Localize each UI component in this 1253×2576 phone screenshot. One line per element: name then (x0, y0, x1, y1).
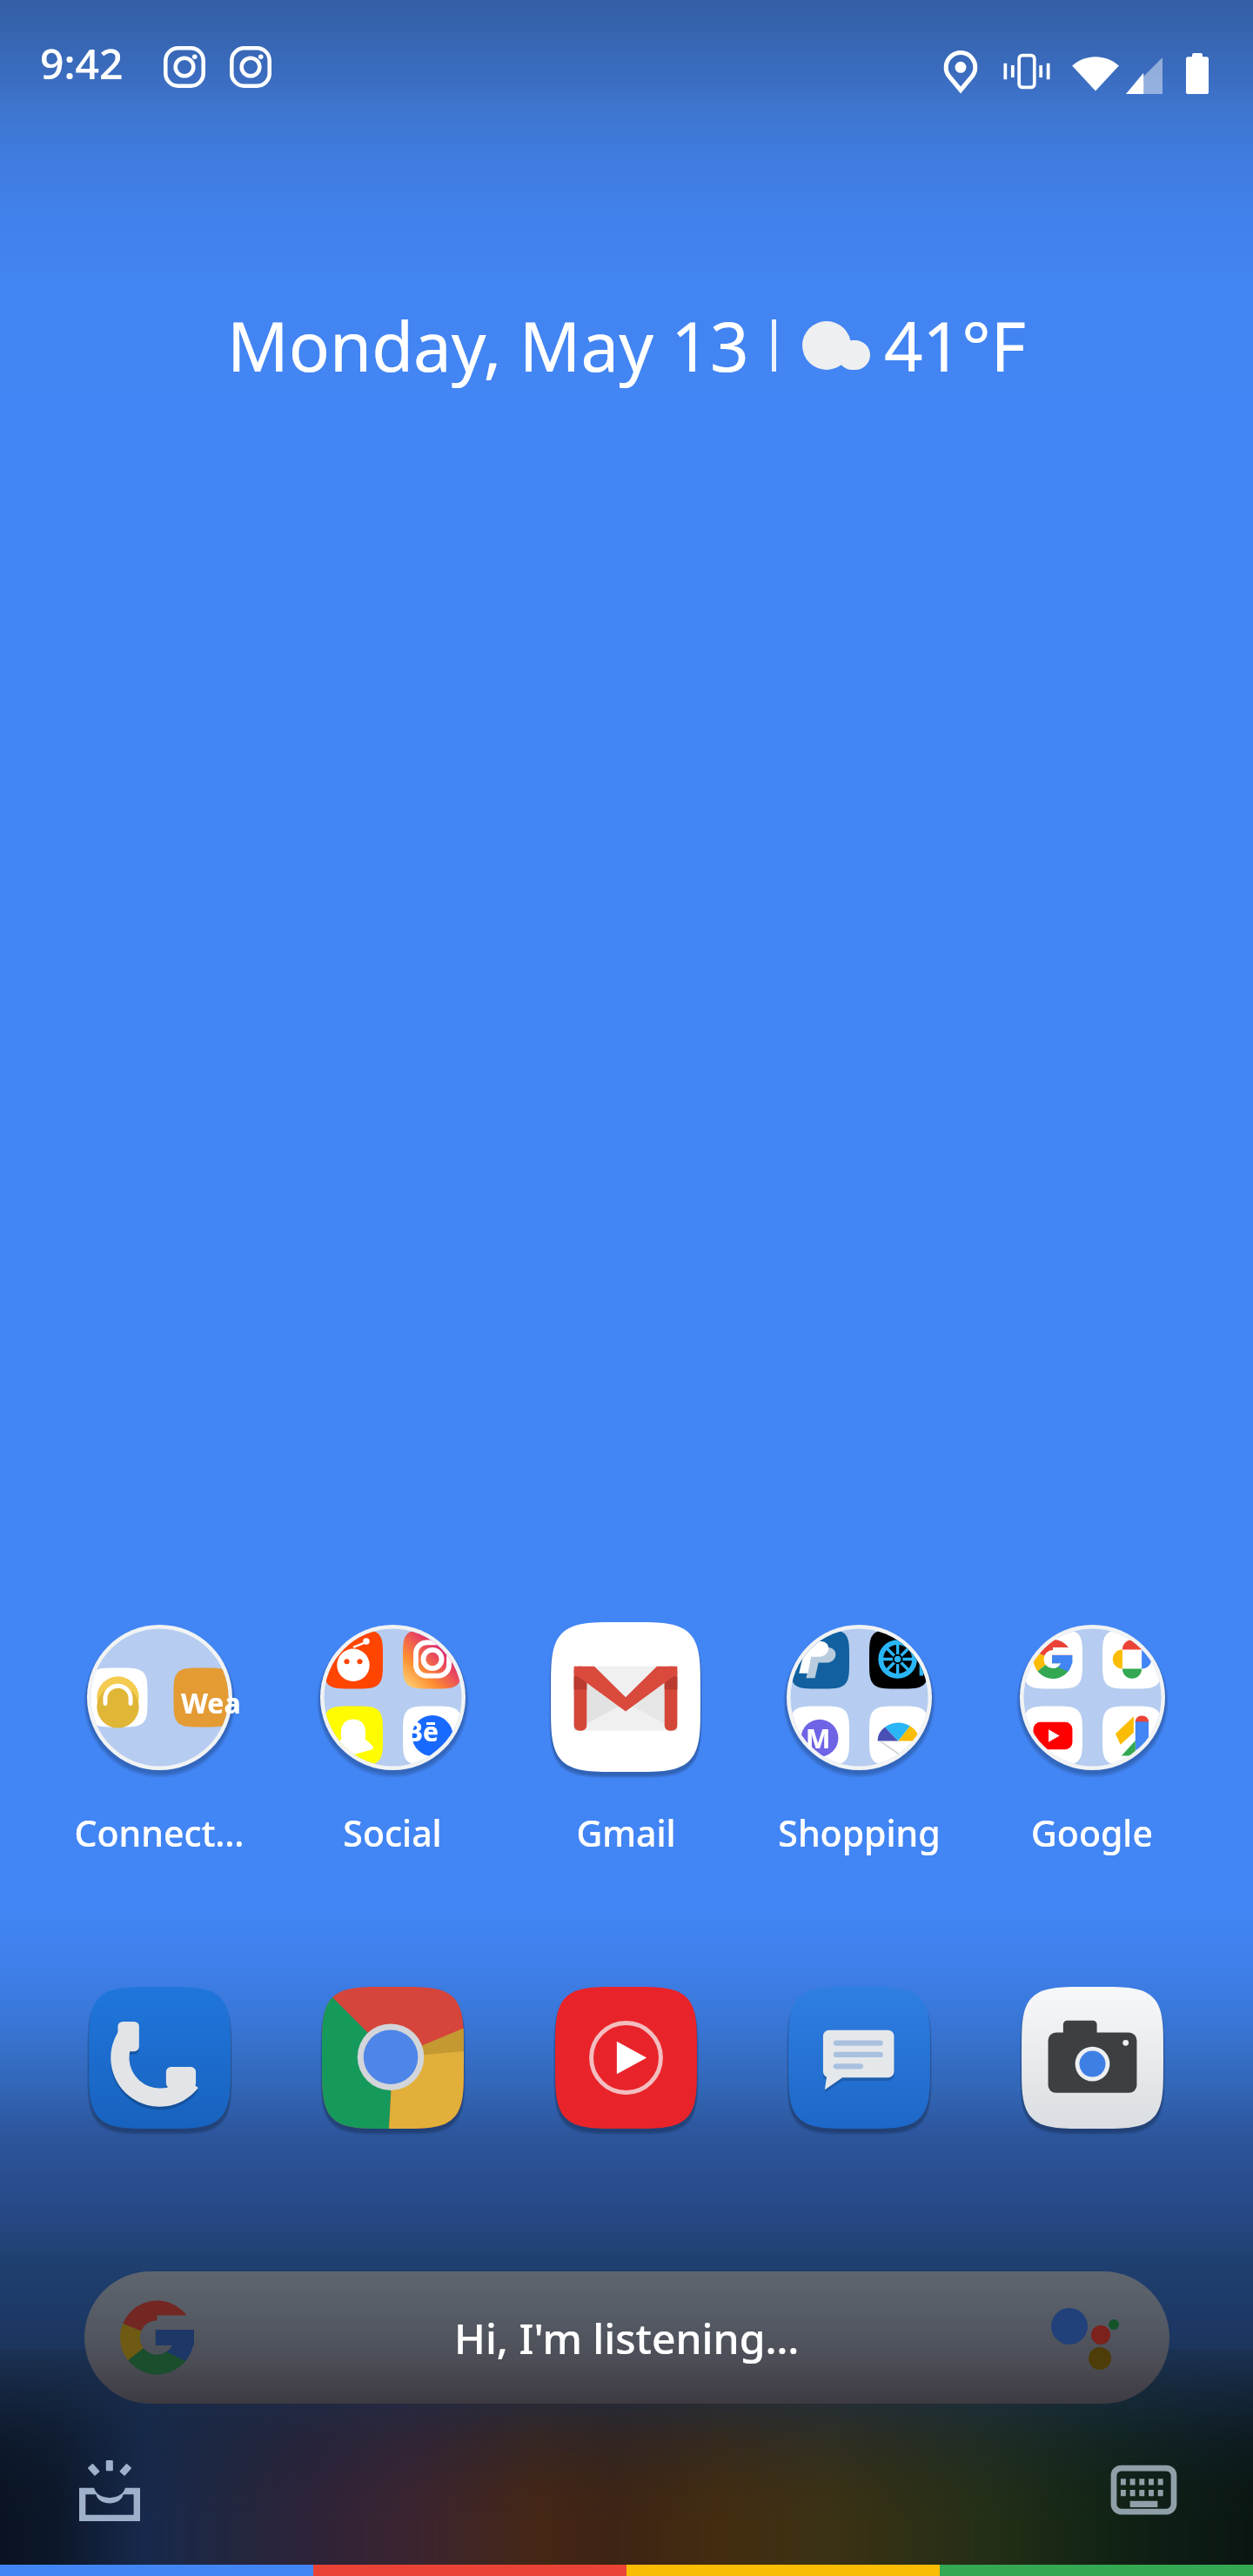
staticText: Wea (181, 1684, 241, 1722)
staticText: Monday, May 13 (227, 299, 749, 392)
button[interactable]: Hi, I'm listening… (84, 2271, 1169, 2404)
button[interactable]: Google (983, 1620, 1201, 1857)
button[interactable]: Gmail (517, 1620, 734, 1857)
staticText: Shopping (778, 1808, 941, 1857)
button[interactable]: Messages (750, 1981, 968, 2134)
staticText: Google (1031, 1808, 1153, 1857)
button[interactable]: Bē (284, 1620, 501, 1857)
staticText: Gmail (576, 1808, 676, 1857)
button[interactable]: Wea (50, 1620, 268, 1857)
staticText: Connect… (74, 1808, 245, 1857)
button[interactable]: Phone (50, 1981, 268, 2134)
button[interactable]: M (750, 1620, 968, 1857)
button[interactable]: All apps (79, 2460, 140, 2521)
button[interactable]: Keyboard (1114, 2468, 1174, 2512)
staticText: Bē (405, 1714, 439, 1749)
staticText: Social (343, 1808, 442, 1857)
button[interactable]: Camera (983, 1981, 1201, 2134)
staticText: 41°F (884, 299, 1027, 392)
staticText: M (806, 1721, 831, 1756)
staticText: Hi, I'm listening… (454, 2310, 800, 2366)
button[interactable]: YouTube Music (517, 1981, 734, 2134)
button[interactable]: Monday, May 13 (0, 299, 1253, 392)
button[interactable]: Chrome (284, 1981, 501, 2134)
staticText: 9:42 (40, 35, 124, 91)
